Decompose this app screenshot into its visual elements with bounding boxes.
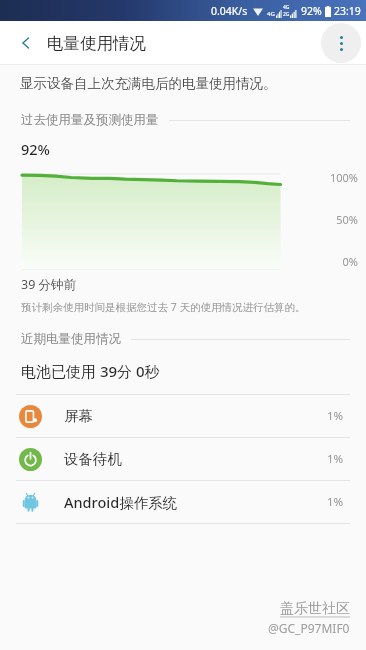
staticText: 1% xyxy=(327,451,344,467)
staticText: 92% xyxy=(21,139,50,159)
staticText: Android操作系统 xyxy=(64,492,327,512)
staticText: 100% xyxy=(320,170,358,185)
staticText: 4G xyxy=(283,4,290,11)
staticText: 92% xyxy=(301,4,322,18)
staticText: 电量使用情况 xyxy=(47,33,146,54)
staticText: 显示设备自上次充满电后的电量使用情况。 xyxy=(20,75,277,92)
button[interactable]: Android操作系统 xyxy=(0,481,366,523)
staticText: 4G xyxy=(267,10,275,18)
staticText: 电池已使用 39分 0秒 xyxy=(21,361,160,381)
button[interactable]: More options xyxy=(321,23,361,63)
staticText: 预计剩余使用时间是根据您过去 7 天的使用情况进行估算的。 xyxy=(21,300,306,314)
staticText: 盖乐世社区 xyxy=(280,600,350,618)
staticText: 39 分钟前 xyxy=(21,276,77,293)
staticText: 23:19 xyxy=(334,4,361,18)
staticText: 1% xyxy=(327,408,344,424)
staticText: 1% xyxy=(327,494,344,510)
staticText: 2G xyxy=(283,11,290,18)
button[interactable]: Back xyxy=(8,25,44,61)
staticText: 屏幕 xyxy=(64,407,327,425)
staticText: 过去使用量及预测使用量 xyxy=(21,112,159,128)
staticText: 近期电量使用情况 xyxy=(21,331,121,347)
staticText: 设备待机 xyxy=(64,450,327,468)
staticText: 0.04K/s xyxy=(211,4,248,18)
staticText: 50% xyxy=(320,212,358,227)
staticText: 0% xyxy=(320,254,358,269)
button[interactable]: 设备待机 xyxy=(0,438,366,480)
button[interactable]: 屏幕 xyxy=(0,395,366,437)
staticText: @GC_P97MIF0 xyxy=(268,620,350,636)
